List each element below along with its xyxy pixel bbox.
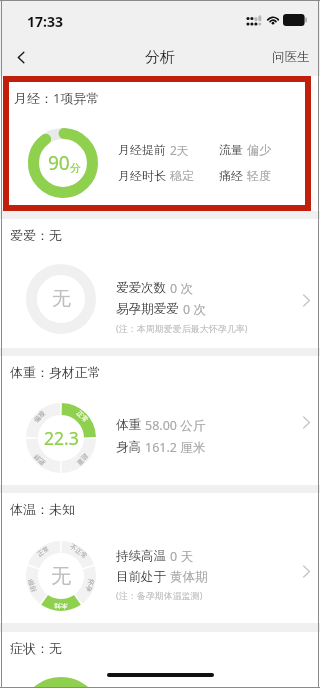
staticText: (注：本周期爱爱后最大怀孕几率): [116, 322, 248, 334]
button[interactable]: Back: [0, 38, 42, 76]
staticText: 流量: [219, 142, 243, 157]
staticText: 0 次: [183, 301, 206, 318]
staticText: 易孕期爱爱: [116, 301, 179, 317]
staticText: 痛经: [219, 168, 243, 183]
button[interactable]: 体温：未知: [0, 493, 320, 623]
staticText: (注：备孕期体温监测): [116, 589, 203, 601]
staticText: 月经提前: [118, 142, 166, 157]
staticText: 体重: [116, 417, 141, 433]
staticText: 0 次: [170, 280, 193, 297]
button[interactable]: 体重：身材正常: [0, 356, 320, 485]
button[interactable]: 问医生: [272, 38, 320, 76]
staticText: 分析: [145, 48, 175, 67]
staticText: 0 天: [170, 548, 193, 565]
staticText: 爱爱：无: [10, 227, 62, 243]
staticText: 目前处于: [116, 569, 166, 585]
staticText: 2天: [170, 142, 189, 158]
button[interactable]: 爱爱：无: [0, 219, 320, 348]
staticText: 分: [70, 161, 81, 175]
staticText: 月经：1项异常: [14, 89, 100, 107]
staticText: 稳定: [170, 168, 194, 183]
staticText: 22.3: [44, 426, 79, 450]
staticText: 无: [52, 287, 71, 311]
staticText: 爱爱次数: [116, 280, 166, 296]
staticText: 轻度: [247, 168, 271, 183]
staticText: 无: [51, 564, 71, 589]
staticText: 161.2 厘米: [145, 439, 206, 456]
staticText: 体重：身材正常: [10, 364, 101, 380]
staticText: 月经时长: [118, 168, 166, 183]
button[interactable]: 症状：无: [0, 632, 320, 688]
staticText: 黄体期: [170, 569, 208, 585]
staticText: 身高: [116, 439, 141, 455]
staticText: 问医生: [272, 49, 310, 65]
staticText: 症状：无: [10, 640, 62, 656]
staticText: 58.00 公斤: [145, 417, 206, 434]
staticText: 体温：未知: [10, 501, 75, 517]
staticText: 持续高温: [116, 548, 166, 564]
staticText: 17:33: [27, 12, 63, 31]
staticText: 偏少: [247, 142, 271, 157]
staticText: 90: [48, 150, 70, 176]
